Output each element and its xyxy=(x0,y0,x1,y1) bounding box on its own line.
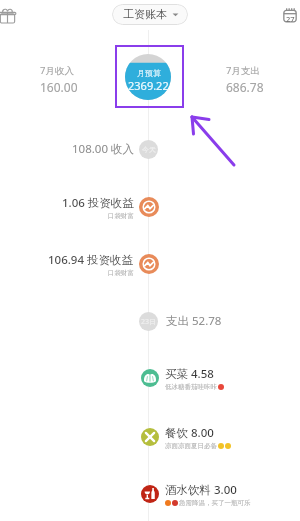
staticText: 低冰糖番茄哇咔咔 xyxy=(165,383,217,390)
button[interactable]: 1.06 投资收益 xyxy=(0,195,300,219)
button[interactable]: 23日 xyxy=(139,312,158,331)
staticText: 108.00 收入 xyxy=(72,141,134,157)
staticText: 1.06 投资收益 xyxy=(62,195,134,211)
button[interactable]: Gift xyxy=(0,0,22,30)
button[interactable]: 买菜 4.58 xyxy=(141,366,224,390)
staticText: 今天 xyxy=(142,145,156,154)
staticText: 餐饮 8.00 xyxy=(165,425,214,441)
button[interactable]: Calendar xyxy=(277,2,300,28)
staticText: 686.78 xyxy=(226,79,264,95)
button[interactable]: 月预算 xyxy=(125,54,171,100)
staticText: 口袋财富 xyxy=(108,212,134,219)
staticText: 月预算 xyxy=(137,68,161,78)
staticText: 160.00 xyxy=(40,79,78,95)
button[interactable]: 106.94 投资收益 xyxy=(0,252,300,276)
staticText: 7月收入 xyxy=(40,64,74,77)
staticText: 急需降温，买了一瓶可乐 xyxy=(179,499,251,506)
staticText: 2369.22 xyxy=(128,78,169,93)
button[interactable]: 今天 xyxy=(139,140,158,159)
button[interactable]: 酒水饮料 3.00 xyxy=(141,482,251,506)
staticText: 23日 xyxy=(141,317,157,327)
staticText: 7月支出 xyxy=(226,64,260,77)
staticText: 凉面凉面夏日必备 xyxy=(165,442,217,449)
staticText: 酒水饮料 3.00 xyxy=(165,482,237,498)
staticText: 口袋财富 xyxy=(108,269,134,276)
staticText: 106.94 投资收益 xyxy=(48,252,134,268)
button[interactable]: 餐饮 8.00 xyxy=(141,425,231,449)
button[interactable]: 工资账本 xyxy=(112,4,188,25)
staticText: 买菜 4.58 xyxy=(165,366,214,382)
staticText: 工资账本 xyxy=(123,7,167,21)
staticText: 27 xyxy=(286,14,295,24)
staticText: 支出 52.78 xyxy=(166,313,222,329)
